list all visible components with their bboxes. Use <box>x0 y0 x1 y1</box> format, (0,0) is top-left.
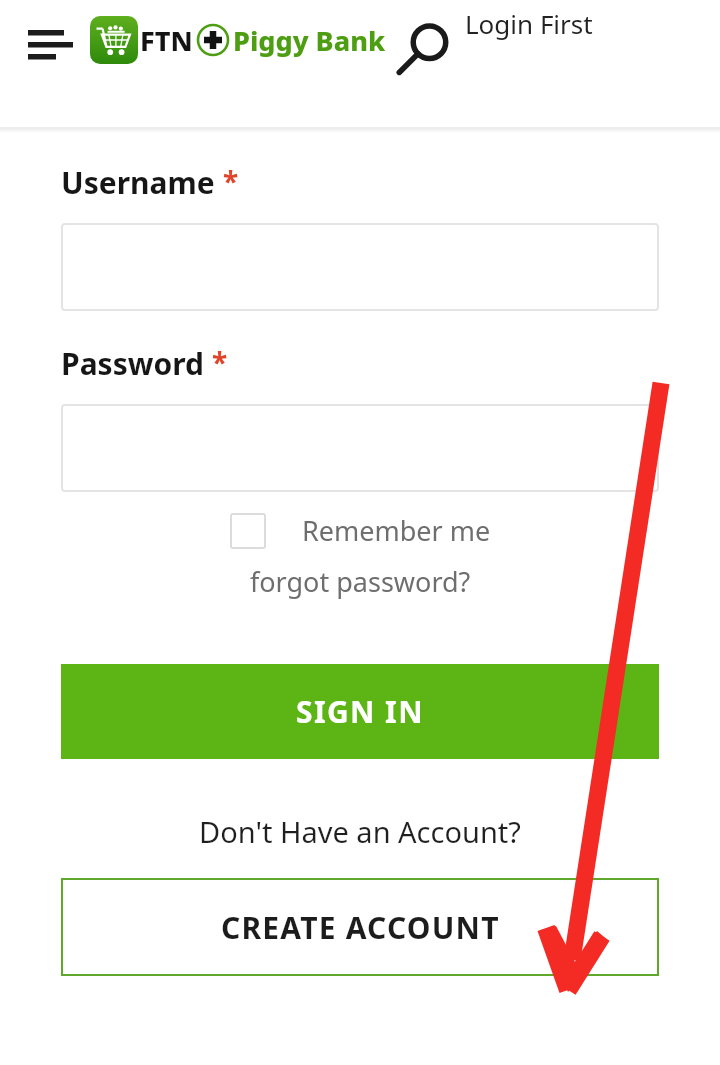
button[interactable]: Login First <box>465 6 615 41</box>
button[interactable] <box>61 404 659 492</box>
staticText: SIGN IN <box>296 691 424 732</box>
staticText: Don't Have an Account? <box>199 812 521 851</box>
button[interactable]: FTN <box>90 16 386 64</box>
staticText: Password <box>61 343 204 384</box>
button[interactable]: Remember me <box>61 512 659 549</box>
staticText: Remember me <box>302 512 491 549</box>
staticText: forgot password? <box>250 563 471 600</box>
button[interactable]: Search <box>387 12 465 84</box>
staticText: Piggy Bank <box>233 22 386 59</box>
staticText: * <box>212 343 228 381</box>
staticText: Username <box>61 162 215 203</box>
button[interactable] <box>61 223 659 311</box>
button[interactable]: SIGN IN <box>61 664 659 759</box>
button[interactable]: forgot password? <box>61 563 659 600</box>
staticText: Login First <box>465 6 593 41</box>
staticText: CREATE ACCOUNT <box>221 907 500 948</box>
staticText: FTN <box>140 22 193 59</box>
button[interactable]: CREATE ACCOUNT <box>61 878 659 976</box>
staticText: * <box>223 162 239 200</box>
button[interactable]: Menu <box>14 14 86 72</box>
